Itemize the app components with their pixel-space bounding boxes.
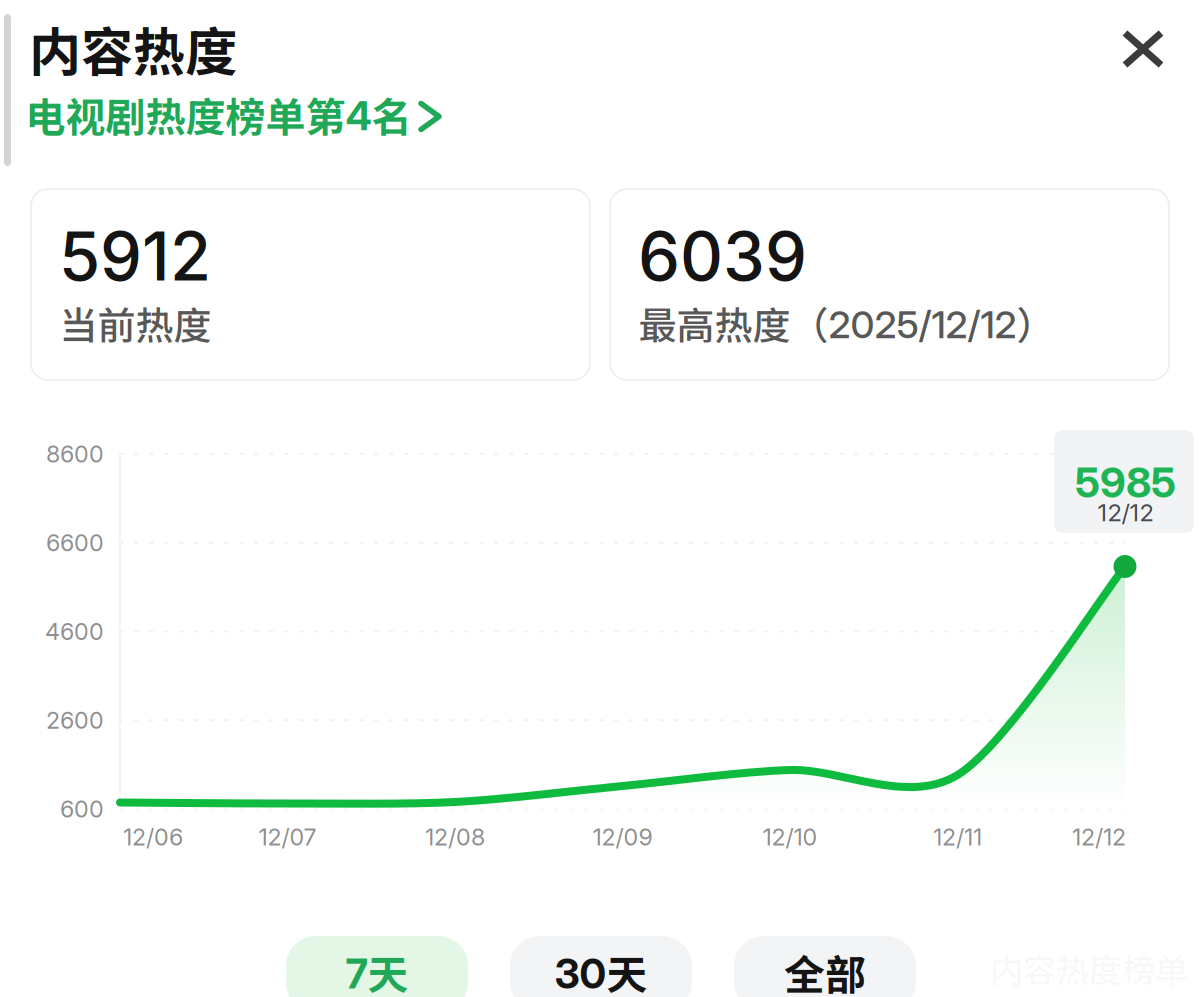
staticText: 4600 (45, 617, 104, 646)
staticText: 当前热度 (59, 295, 211, 350)
button[interactable]: 7天 (286, 936, 468, 997)
staticText: 最高热度（2025/12/12） (638, 295, 1054, 350)
staticText: 12/06 (123, 823, 183, 851)
staticText: 6039 (638, 216, 807, 297)
staticText: 全部 (784, 943, 866, 997)
staticText: 6600 (46, 529, 104, 557)
staticText: 12/12 (1072, 823, 1126, 851)
staticText: 12/09 (592, 823, 652, 851)
staticText: 600 (60, 795, 104, 823)
button[interactable]: 30天 (510, 936, 692, 997)
staticText: 30天 (554, 943, 647, 997)
staticText: 5912 (59, 216, 211, 297)
staticText: 5985 (1075, 457, 1176, 507)
staticText: 电视剧热度榜单第4名 (26, 85, 412, 143)
staticText: 7天 (345, 943, 408, 997)
staticText: 12/10 (762, 823, 817, 851)
button[interactable]: 电视剧热度榜单第4名 (20, 80, 460, 142)
staticText: 8600 (46, 440, 104, 468)
staticText: 12/11 (933, 823, 982, 851)
staticText: 内容热度 (29, 11, 237, 86)
button[interactable]: 全部 (734, 936, 916, 997)
staticText: 12/08 (425, 823, 485, 851)
staticText: 12/07 (258, 823, 316, 851)
staticText: 2600 (46, 706, 104, 734)
staticText: 12/12 (1097, 498, 1153, 527)
button[interactable]: 关闭 (1104, 10, 1182, 88)
